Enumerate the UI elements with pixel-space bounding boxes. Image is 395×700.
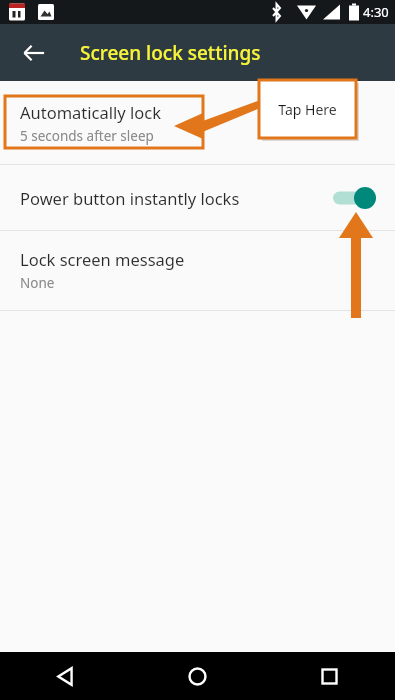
- button[interactable]: Power button instantly locks: [0, 165, 395, 230]
- staticText: Lock screen message: [20, 248, 185, 270]
- staticText: 5 seconds after sleep: [20, 127, 154, 145]
- staticText: Automatically lock: [20, 101, 161, 123]
- button[interactable]: Home: [131, 652, 263, 700]
- button[interactable]: Back: [0, 652, 131, 700]
- staticText: None: [20, 274, 55, 292]
- staticText: Power button instantly locks: [20, 187, 331, 209]
- button[interactable]: Back: [14, 33, 54, 73]
- staticText: 4:30: [363, 3, 389, 21]
- button[interactable]: Power button instantly locks toggle: [331, 183, 377, 213]
- button[interactable]: Lock screen message: [0, 231, 395, 310]
- button[interactable]: Tap Here: [259, 80, 356, 138]
- button[interactable]: Recent apps: [263, 652, 395, 700]
- staticText: Tap Here: [278, 100, 337, 119]
- staticText: Screen lock settings: [80, 40, 261, 66]
- button[interactable]: Automatically lock: [0, 81, 395, 164]
